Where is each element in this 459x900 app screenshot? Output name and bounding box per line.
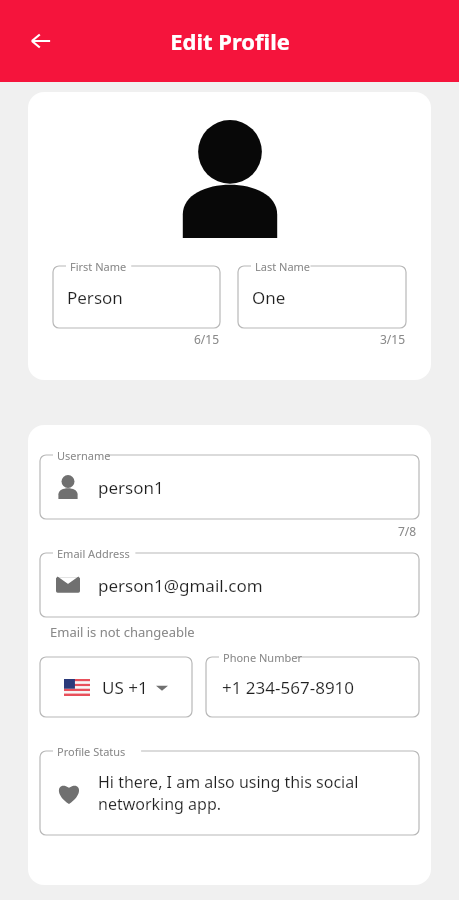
staticText: person1 bbox=[98, 476, 164, 499]
staticText: 7/8 bbox=[398, 523, 417, 539]
staticText: person1@gmail.com bbox=[98, 574, 263, 597]
staticText: US +1 bbox=[102, 676, 148, 699]
staticText: Hi there, I am also using this social ne… bbox=[98, 771, 407, 815]
staticText: Email Address bbox=[57, 546, 130, 561]
button[interactable]: Email Address bbox=[40, 553, 419, 617]
staticText: Profile Status bbox=[57, 744, 126, 759]
staticText: Person bbox=[67, 286, 123, 309]
staticText: 3/15 bbox=[380, 331, 406, 347]
staticText: +1 234-567-8910 bbox=[222, 676, 355, 699]
button[interactable]: Profile Status bbox=[40, 751, 419, 835]
staticText: Username bbox=[57, 448, 111, 463]
button[interactable]: US +1 bbox=[40, 657, 192, 717]
staticText: Edit Profile bbox=[170, 26, 290, 56]
staticText: 6/15 bbox=[194, 331, 220, 347]
staticText: Last Name bbox=[255, 259, 311, 274]
button[interactable]: Username bbox=[40, 455, 419, 519]
button[interactable]: Back bbox=[20, 20, 62, 62]
staticText: First Name bbox=[70, 259, 127, 274]
staticText: Email is not changeable bbox=[50, 623, 195, 641]
button[interactable]: First Name bbox=[53, 266, 220, 328]
button[interactable]: Last Name bbox=[238, 266, 406, 328]
staticText: Phone Number bbox=[223, 650, 302, 665]
button[interactable]: Phone Number bbox=[206, 657, 419, 717]
staticText: One bbox=[252, 286, 286, 309]
